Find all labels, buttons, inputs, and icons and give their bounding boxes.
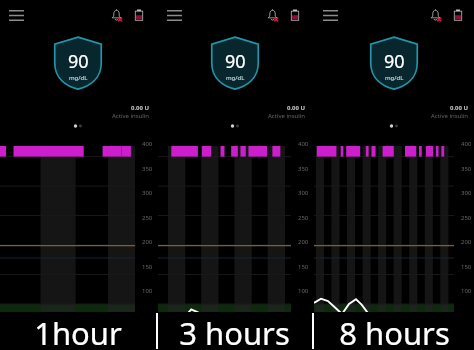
staticText: 8 hours (339, 312, 450, 350)
staticText: 100 (298, 287, 309, 295)
staticText: 250 (461, 214, 472, 222)
staticText: 100 (142, 287, 153, 295)
staticText: Active insulin (268, 112, 306, 120)
staticText: mg/dL (69, 74, 88, 82)
staticText: 200 (298, 238, 309, 246)
staticText: 0.00 U (450, 104, 469, 112)
staticText: 350 (298, 165, 309, 173)
staticText: mg/dL (385, 74, 404, 82)
staticText: Active insulin (431, 112, 469, 120)
staticText: 200 (142, 238, 153, 246)
staticText: mg/dL (226, 74, 245, 82)
button[interactable]: Insulin reservoir (448, 5, 468, 25)
staticText: 400 (142, 140, 153, 148)
staticText: 350 (142, 165, 153, 173)
staticText: 250 (142, 214, 153, 222)
staticText: 400 (298, 140, 309, 148)
button[interactable]: Alerts muted (262, 5, 282, 25)
button[interactable]: Menu (4, 3, 28, 27)
staticText: 100 (461, 287, 472, 295)
staticText: Active insulin (112, 112, 150, 120)
staticText: 300 (142, 189, 153, 197)
staticText: 3 hours (179, 312, 290, 350)
staticText: 300 (298, 189, 309, 197)
staticText: 200 (461, 238, 472, 246)
staticText: 400 (461, 140, 472, 148)
button[interactable]: Alerts muted (425, 5, 445, 25)
staticText: 90 (384, 49, 405, 74)
staticText: 0.00 U (131, 104, 150, 112)
staticText: 250 (298, 214, 309, 222)
button[interactable]: 3 hours (158, 312, 311, 350)
staticText: 150 (298, 263, 309, 271)
staticText: 90 (68, 49, 89, 74)
button[interactable]: Menu (162, 3, 186, 27)
button[interactable]: Menu (318, 3, 342, 27)
button[interactable]: 1hour (0, 312, 155, 350)
staticText: 0.00 U (287, 104, 306, 112)
button[interactable]: Alerts muted (106, 5, 126, 25)
staticText: 150 (461, 263, 472, 271)
staticText: 150 (142, 263, 153, 271)
staticText: 90 (225, 49, 246, 74)
button[interactable]: Insulin reservoir (285, 5, 305, 25)
button[interactable]: Insulin reservoir (129, 5, 149, 25)
staticText: 300 (461, 189, 472, 197)
staticText: 1hour (34, 312, 122, 350)
button[interactable]: 8 hours (314, 312, 474, 350)
staticText: 350 (461, 165, 472, 173)
